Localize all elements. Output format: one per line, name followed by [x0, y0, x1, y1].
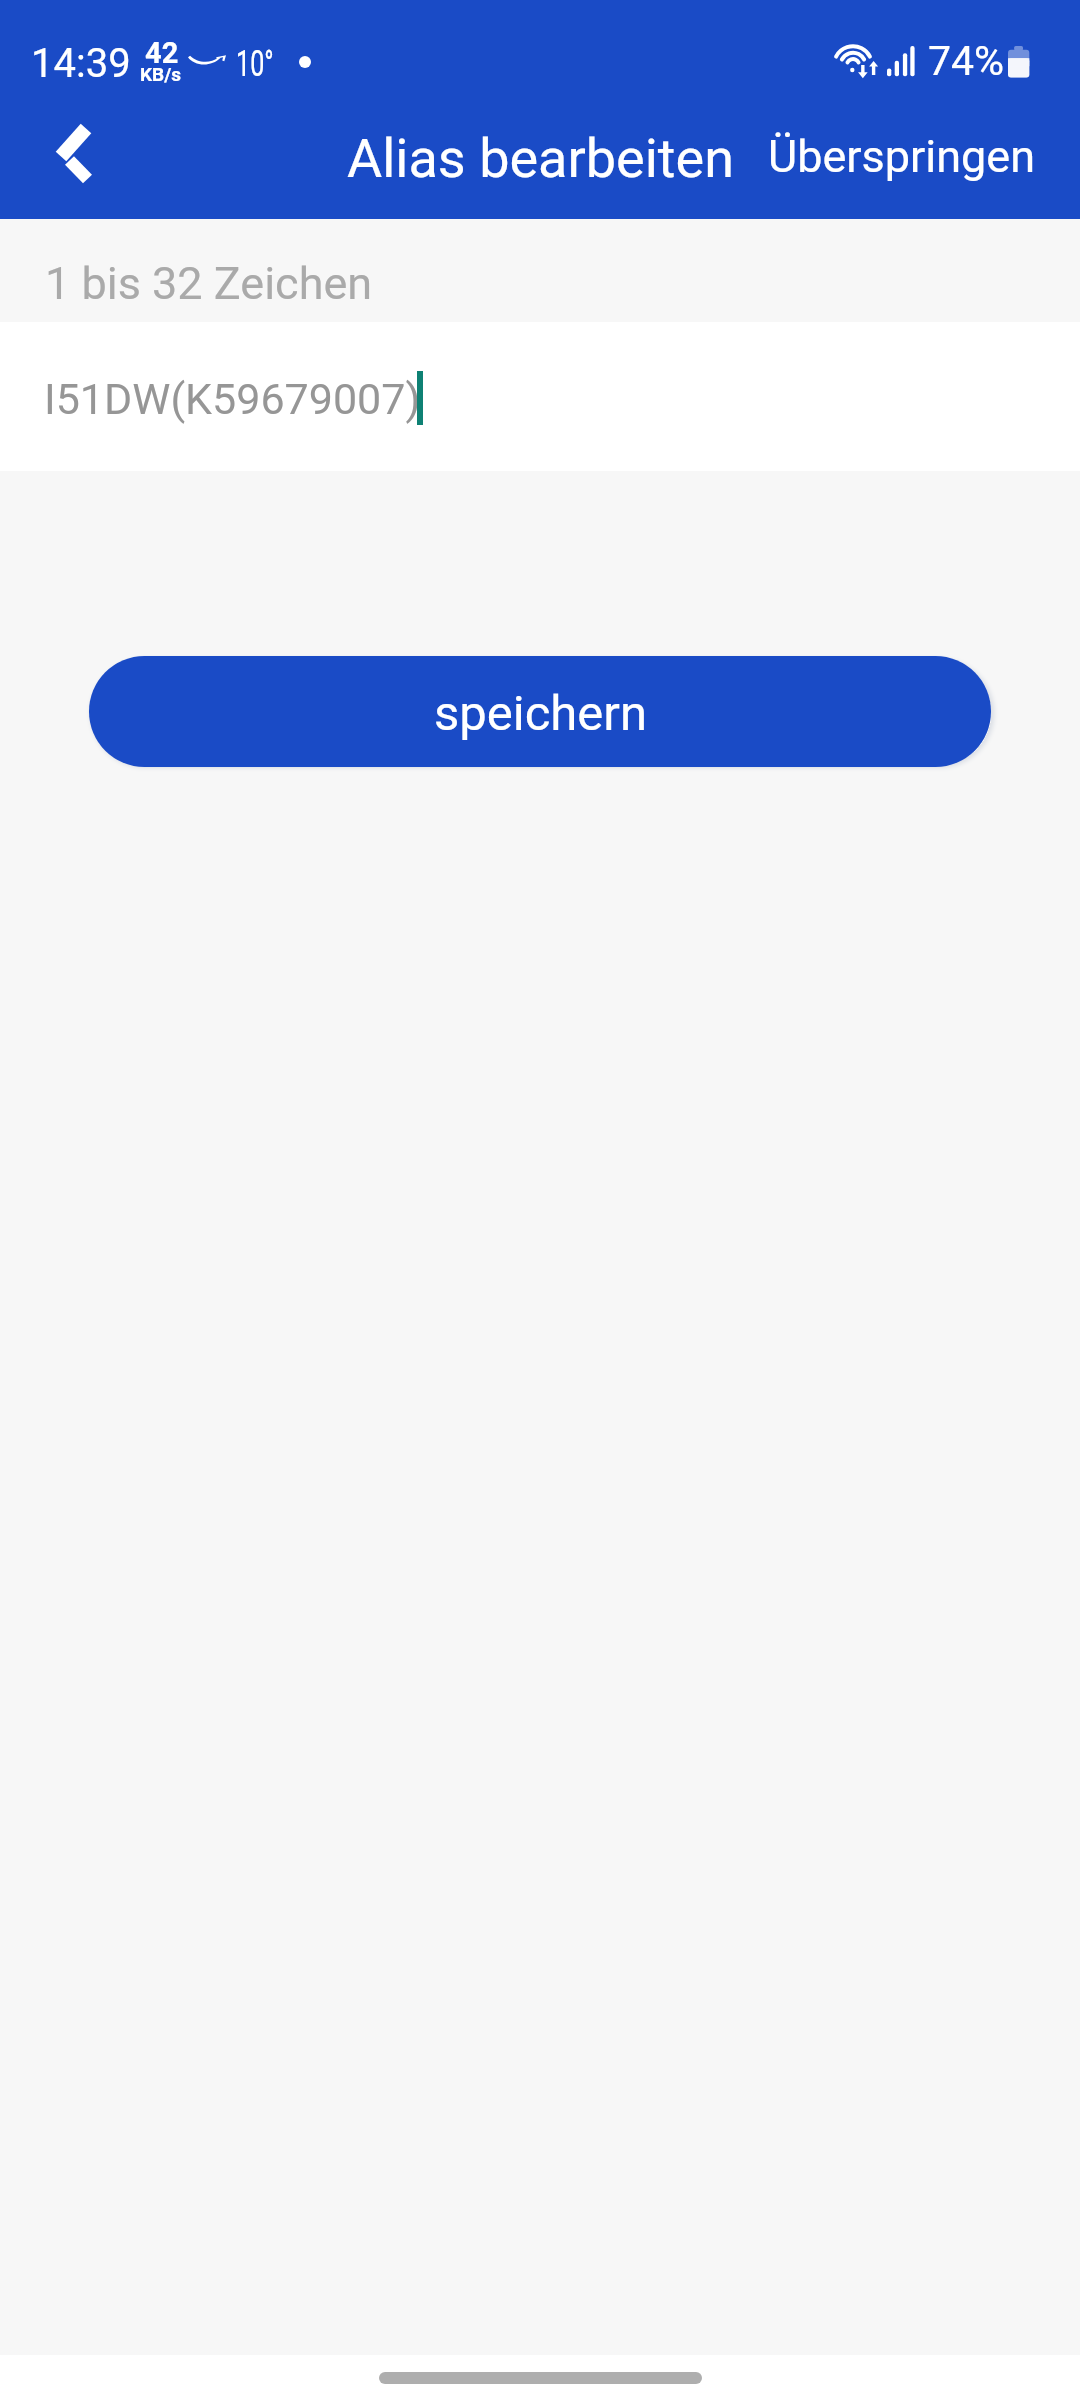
staticText: 1 bis 32 Zeichen: [45, 257, 373, 310]
button[interactable]: Back: [9, 100, 129, 220]
staticText: Überspringen: [768, 130, 1036, 183]
button[interactable]: I51DW(K59679007): [0, 322, 1080, 471]
staticText: 42: [145, 36, 179, 70]
staticText: 74%: [928, 37, 1005, 85]
staticText: speichern: [434, 685, 647, 742]
staticText: I51DW(K59679007): [44, 374, 421, 424]
staticText: Alias bearbeiten: [347, 127, 734, 190]
button[interactable]: Überspringen: [752, 110, 1052, 219]
button[interactable]: speichern: [89, 656, 991, 767]
staticText: 10°: [236, 42, 274, 85]
staticText: KB/s: [140, 63, 182, 85]
staticText: 14:39: [31, 40, 131, 87]
